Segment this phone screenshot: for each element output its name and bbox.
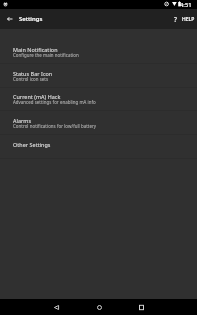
button[interactable]: Alarms xyxy=(0,111,197,135)
button[interactable]: ? xyxy=(170,11,197,28)
button[interactable]: Back xyxy=(0,9,19,29)
button[interactable]: Main Notification xyxy=(0,40,197,64)
staticText: Current (mA) Hack xyxy=(13,93,61,100)
staticText: Settings xyxy=(19,15,43,23)
staticText: Status Bar Icon xyxy=(13,70,53,77)
staticText: Alarms xyxy=(13,117,32,124)
button[interactable]: Other Settings xyxy=(0,135,197,159)
staticText: Control notifications for low/full batte… xyxy=(13,123,97,129)
staticText: ? xyxy=(174,15,177,24)
button[interactable]: Back xyxy=(41,299,71,315)
staticText: HELP xyxy=(182,16,195,23)
button[interactable]: Home xyxy=(84,299,114,315)
button[interactable]: Current (mA) Hack xyxy=(0,87,197,111)
staticText: Configure the main notification xyxy=(13,52,79,58)
staticText: Advanced settings for enabling mA info xyxy=(13,99,96,105)
staticText: 4:51 xyxy=(180,1,192,9)
staticText: Main Notification xyxy=(13,46,58,53)
button[interactable]: Recents xyxy=(126,299,156,315)
staticText: Other Settings xyxy=(13,141,51,148)
staticText: Control icon sets xyxy=(13,76,49,82)
button[interactable]: Status Bar Icon xyxy=(0,64,197,88)
